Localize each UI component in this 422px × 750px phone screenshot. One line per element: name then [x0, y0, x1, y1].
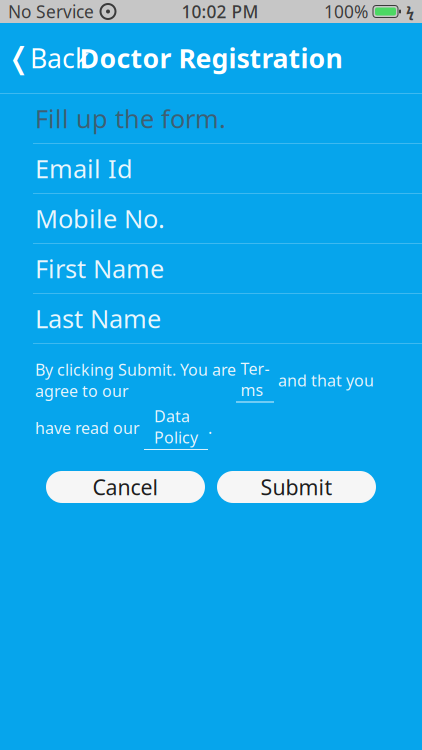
staticText: 100% [324, 0, 368, 23]
button[interactable]: Cancel [46, 471, 205, 503]
staticText: First Name [35, 252, 164, 285]
staticText: and that you [274, 370, 374, 391]
staticText: ❬ [6, 41, 31, 75]
staticText: Fill up the form. [35, 102, 226, 135]
staticText: ϟ [406, 2, 414, 21]
staticText: Mobile No. [35, 202, 165, 235]
staticText: Submit [260, 473, 332, 501]
staticText: Data Policy [154, 405, 198, 448]
staticText: have read our [35, 417, 144, 438]
staticText: Doctor Registration [79, 40, 342, 76]
button[interactable]: Terms [236, 358, 274, 402]
staticText: . [208, 417, 212, 438]
staticText: 10:02 PM [181, 0, 258, 23]
staticText: Last Name [35, 302, 161, 335]
button[interactable]: Data Policy [144, 405, 208, 450]
staticText: Cancel [92, 473, 158, 501]
staticText: No Service [8, 0, 94, 23]
staticText: Back [30, 40, 89, 76]
staticText: By clicking Submit. You are agree to our [35, 359, 236, 401]
button[interactable]: Submit [217, 471, 376, 503]
staticText: Email Id [35, 152, 133, 185]
button[interactable]: ❬ [0, 35, 101, 81]
staticText: Terms [240, 358, 269, 400]
